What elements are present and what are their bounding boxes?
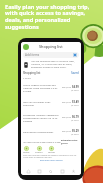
button[interactable]: Shopping list <box>23 71 41 75</box>
staticText: Services <box>48 151 55 153</box>
staticText: You didn't found a deal? Make it a deal <box>23 141 61 144</box>
button[interactable]: Fresh Blend Unsalted Butter <box>23 128 79 137</box>
button[interactable]: Account <box>23 44 29 50</box>
staticText: $0.45/oz <box>71 89 79 92</box>
staticText: Malt Mill Nut Butter Cups Chocolate <box>23 101 60 107</box>
button[interactable]: Search <box>47 168 54 175</box>
staticText: Cracked Bit Naturally Applewood Smoked B… <box>23 114 60 123</box>
staticText: $0.22/oz <box>71 104 79 107</box>
button[interactable]: Amour Organic Chocolate and Naturals Whi… <box>23 83 79 94</box>
button[interactable]: Departments <box>36 168 43 175</box>
staticText: $3.49 <box>72 100 79 104</box>
staticText: Easily plan your shopping trip, with qui… <box>5 3 90 31</box>
staticText: Amour Organic Chocolate and Naturals Whi… <box>23 84 60 93</box>
staticText: You are shopping 5050 in Ashburn West, A… <box>31 60 79 69</box>
staticText: Shopping list <box>39 44 63 49</box>
staticText: Fresh Blend Unsalted Butter <box>23 131 60 134</box>
button[interactable]: Read more about savings <box>23 159 79 162</box>
button[interactable]: Services <box>48 146 55 153</box>
button[interactable]: Home <box>25 168 32 175</box>
button[interactable]: My items <box>59 168 66 175</box>
button[interactable]: Malt Mill Nut Butter Cups Chocolate <box>23 98 79 109</box>
other: Clear <box>73 53 77 57</box>
staticText: was $7.99 <box>62 101 71 104</box>
staticText: $5.29 <box>72 129 79 133</box>
staticText: was $7.99 <box>62 116 71 119</box>
staticText: 4 items <box>23 77 31 80</box>
staticText: Add items <box>25 53 40 57</box>
staticText: was $7.99 <box>62 130 71 133</box>
staticText: Shopping list <box>23 71 41 75</box>
staticText: Coupons <box>35 151 43 153</box>
staticText: Estimated Total: $20.56 <box>61 139 79 145</box>
staticText: $0.33/oz <box>71 133 79 136</box>
button[interactable]: Savings <box>23 146 30 153</box>
staticText: was $7.99 <box>62 86 71 89</box>
staticText: $0.42/oz <box>71 119 79 122</box>
button[interactable]: Coupons <box>35 146 43 153</box>
staticText: $4.99 <box>72 85 79 89</box>
staticText: Savings <box>23 151 30 153</box>
staticText: Read more about savings <box>40 159 63 162</box>
staticText: Saved <box>71 71 79 75</box>
button[interactable]: Saved <box>71 71 79 75</box>
button[interactable]: Cracked Bit Naturally Applewood Smoked B… <box>23 113 79 124</box>
staticText: Total item count and savings are based o… <box>23 154 79 158</box>
staticText: $6.79 <box>72 115 79 119</box>
button[interactable]: Account <box>70 168 77 175</box>
button[interactable]: Add items <box>25 52 77 58</box>
